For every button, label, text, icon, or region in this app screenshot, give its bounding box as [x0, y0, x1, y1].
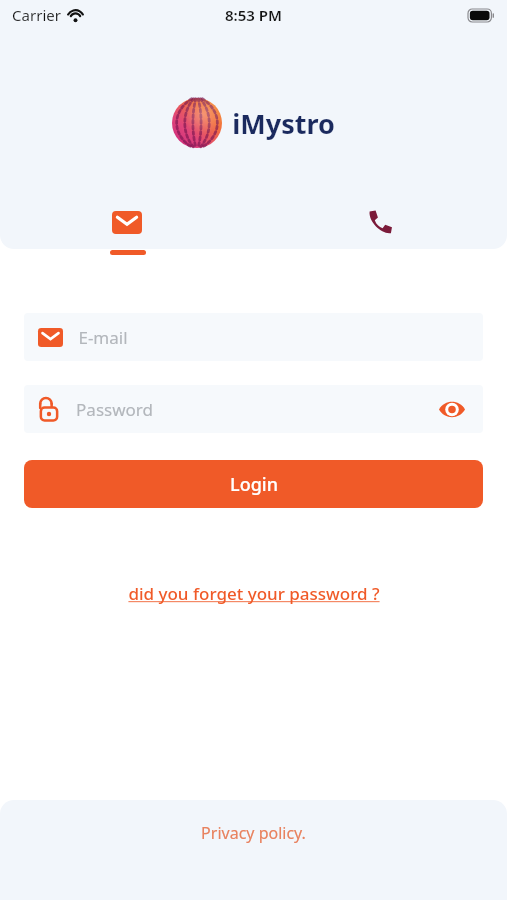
staticText: 8:53 PM [225, 5, 282, 25]
button[interactable]: Privacy policy. [193, 818, 314, 848]
button[interactable]: Show password [435, 392, 469, 426]
button[interactable]: Password [24, 385, 483, 433]
button[interactable]: did you forget your password ? [122, 578, 386, 609]
button[interactable]: Phone login tab [330, 196, 430, 248]
staticText: iMystro [232, 105, 335, 142]
button[interactable]: Email login tab [77, 196, 177, 248]
button[interactable]: Login [24, 460, 483, 508]
staticText: Privacy policy. [201, 822, 306, 844]
button[interactable]: E-mail [24, 313, 483, 361]
staticText: E-mail [78, 326, 128, 349]
staticText: Carrier [12, 5, 61, 25]
staticText: did you forget your password ? [128, 582, 380, 605]
staticText: Login [230, 472, 278, 497]
staticText: Password [76, 398, 153, 421]
